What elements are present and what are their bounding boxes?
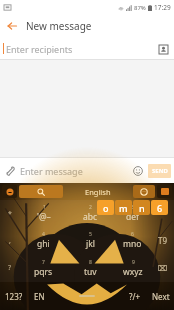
button[interactable]: Add recipients from contacts <box>154 40 172 58</box>
button[interactable]: Keyboard options <box>157 185 172 198</box>
staticText: 4 <box>42 231 45 238</box>
button[interactable]: 8 <box>67 254 114 282</box>
staticText: n <box>139 202 145 214</box>
button[interactable]: ? <box>0 254 20 282</box>
staticText: ? <box>8 263 12 273</box>
staticText: Next <box>152 291 170 302</box>
button[interactable]: ?/+ <box>122 282 148 310</box>
staticText: English <box>85 187 111 197</box>
button[interactable] <box>151 200 174 227</box>
staticText: , <box>9 236 11 246</box>
button[interactable]: m <box>115 200 132 215</box>
button[interactable]: EN <box>27 282 52 310</box>
button[interactable]: n <box>133 200 150 215</box>
staticText: Enter recipients <box>6 43 73 55</box>
button[interactable]: Attach file <box>0 161 20 181</box>
button[interactable]: SEND <box>148 164 171 178</box>
button[interactable]: 4 <box>20 227 67 254</box>
button[interactable]: ⌧ <box>151 254 174 282</box>
button[interactable]: 123? <box>0 282 27 310</box>
button[interactable]: Enter recipients <box>0 38 174 59</box>
staticText: 1 <box>43 204 46 211</box>
staticText: 3 <box>131 204 134 211</box>
button[interactable]: 9 <box>114 254 151 282</box>
staticText: 2 <box>89 204 92 211</box>
button[interactable]: Insert emoji <box>128 161 148 181</box>
staticText: pqrs <box>34 266 53 278</box>
staticText: 87% <box>134 4 146 12</box>
staticText: 6 <box>131 231 134 238</box>
button[interactable]: 3 <box>114 200 151 227</box>
staticText: o <box>103 202 109 214</box>
button[interactable]: 6 <box>114 227 151 254</box>
staticText: '@– <box>37 211 51 223</box>
button[interactable]: * <box>0 200 20 227</box>
button[interactable]: T9 <box>151 227 174 254</box>
button[interactable]: Next <box>148 282 174 310</box>
staticText: 8 <box>89 259 92 266</box>
staticText: 6 <box>157 202 163 214</box>
staticText: EN <box>34 291 45 302</box>
button[interactable]: 7 <box>20 254 67 282</box>
button[interactable]: Search <box>19 185 63 198</box>
staticText: tuv <box>84 266 97 278</box>
button[interactable]: 1 <box>20 200 67 227</box>
staticText: jkl <box>86 238 95 250</box>
staticText: mno <box>123 238 142 250</box>
button[interactable]: 6 <box>151 200 168 215</box>
staticText: 17:29 <box>154 3 171 12</box>
staticText: T9 <box>158 235 168 246</box>
button[interactable]: , <box>0 227 20 254</box>
staticText: 7 <box>42 259 45 266</box>
button[interactable]: 5 <box>67 227 114 254</box>
staticText: ghi <box>37 238 50 250</box>
staticText: def <box>126 211 139 223</box>
staticText: 123? <box>5 291 23 302</box>
staticText: wxyz <box>123 266 143 278</box>
button[interactable]: English <box>65 185 131 198</box>
staticText: ⌧ <box>158 264 168 273</box>
button[interactable]: Emoji <box>133 185 155 198</box>
staticText: abc <box>83 211 98 223</box>
button[interactable]: Theme <box>2 185 17 198</box>
button[interactable]: Enter message <box>20 165 128 177</box>
staticText: ?/+ <box>129 291 141 302</box>
button[interactable]: Back <box>0 14 24 38</box>
staticText: m <box>119 202 128 214</box>
staticText: 5 <box>89 231 92 238</box>
staticText: SEND <box>152 167 168 175</box>
button[interactable]: 2 <box>67 200 114 227</box>
button[interactable]: o <box>97 200 114 215</box>
staticText: New message <box>26 19 92 33</box>
button[interactable]: Space <box>52 282 122 310</box>
staticText: * <box>8 209 12 219</box>
staticText: 9 <box>132 259 135 266</box>
